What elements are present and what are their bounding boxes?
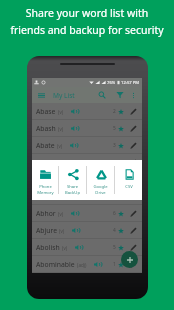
button[interactable]: Filter — [114, 89, 126, 101]
button[interactable]: Open navigation menu — [36, 90, 47, 101]
staticText: Abjure — [36, 226, 57, 235]
staticText: Google Drive — [93, 184, 108, 195]
button[interactable]: Aberrant — [32, 171, 142, 188]
staticText: Aberrant — [36, 175, 65, 184]
button[interactable]: Abet — [32, 188, 142, 205]
button[interactable]: Share BackUp — [59, 160, 86, 200]
staticText: Abominable — [36, 260, 75, 269]
staticText: 6 — [113, 193, 116, 200]
button[interactable]: Phone Memory — [32, 160, 58, 200]
staticText: 12:57 PM — [121, 80, 140, 86]
button[interactable]: Search — [96, 89, 108, 101]
staticText: Abash — [36, 124, 56, 133]
staticText: 2 — [113, 108, 116, 115]
staticText: Abolish — [36, 243, 60, 252]
staticText: Abase — [36, 107, 56, 116]
button[interactable]: Abominable — [32, 256, 142, 273]
staticText: My List — [53, 91, 75, 100]
button[interactable]: Abash — [32, 120, 142, 137]
staticText: 1 — [113, 261, 116, 268]
staticText: 5 — [113, 125, 116, 132]
staticText: (v) — [58, 126, 64, 132]
button[interactable]: Abolish — [32, 239, 142, 256]
staticText: 4 — [113, 227, 116, 234]
staticText: Abdicate — [36, 158, 64, 167]
staticText: Share your word list with friends and ba… — [0, 6, 174, 37]
button[interactable]: More options — [128, 90, 138, 100]
staticText: 4 — [113, 159, 116, 166]
staticText: (v) — [62, 245, 68, 251]
button[interactable]: Google Drive — [87, 160, 114, 200]
staticText: 3 — [113, 142, 116, 149]
staticText: (v) — [58, 109, 64, 115]
staticText: 2 — [113, 176, 116, 183]
staticText: (v) — [59, 228, 65, 234]
staticText: Share BackUp — [65, 184, 80, 195]
button[interactable]: Abate — [32, 137, 142, 154]
staticText: (adj) — [77, 262, 87, 268]
staticText: CSV — [125, 184, 133, 190]
button[interactable]: CSV — [115, 160, 142, 200]
staticText: 76% — [107, 80, 116, 86]
staticText: 5 — [113, 244, 116, 251]
staticText: Abet — [36, 192, 51, 201]
button[interactable]: Add word — [121, 251, 138, 268]
staticText: 6 — [113, 210, 116, 217]
staticText: (v) — [57, 143, 63, 149]
staticText: Abate — [36, 141, 55, 150]
staticText: Phone Memory — [37, 184, 54, 195]
button[interactable]: Abdicate — [32, 154, 142, 171]
button[interactable]: Abhor — [32, 205, 142, 222]
staticText: Abhor — [36, 209, 56, 218]
staticText: (v) — [58, 211, 64, 217]
button[interactable]: Abase — [32, 103, 142, 120]
button[interactable]: Abjure — [32, 222, 142, 239]
staticText: (adj) — [67, 177, 77, 183]
